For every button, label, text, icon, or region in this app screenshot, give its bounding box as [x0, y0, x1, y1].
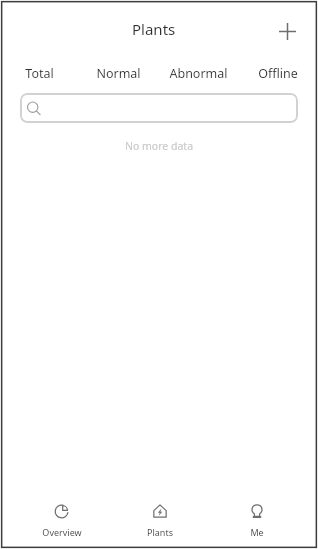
staticText: No more data: [0, 139, 318, 153]
staticText: Abnormal: [169, 65, 228, 82]
staticText: Me: [250, 526, 264, 538]
button[interactable]: Offline: [238, 60, 318, 86]
button[interactable]: Plants: [111, 496, 208, 545]
staticText: Overview: [42, 526, 82, 538]
button[interactable]: Normal: [79, 60, 158, 86]
button[interactable]: Total: [0, 60, 79, 86]
staticText: Plants: [132, 19, 176, 39]
button[interactable]: Add plant: [272, 16, 302, 46]
button[interactable]: Search: [20, 93, 298, 123]
button[interactable]: Abnormal: [158, 60, 238, 86]
staticText: Plants: [147, 526, 173, 538]
staticText: Total: [25, 65, 54, 82]
button[interactable]: Overview: [13, 496, 111, 545]
button[interactable]: Me: [208, 496, 305, 545]
staticText: Offline: [258, 65, 298, 82]
staticText: Normal: [96, 65, 141, 82]
